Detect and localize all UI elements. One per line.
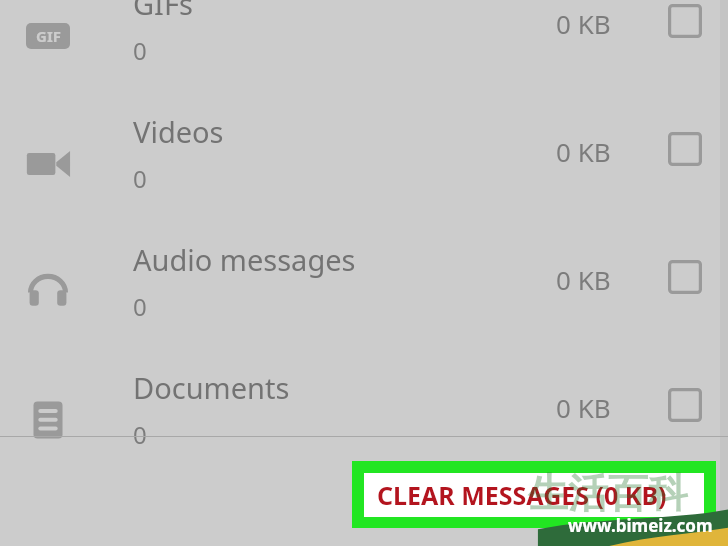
button[interactable]: Select Videos [668, 132, 702, 166]
button[interactable]: Select Documents [668, 388, 702, 422]
staticText: Documents [133, 368, 290, 407]
button[interactable]: CLEAR MESSAGES (0 KB) [352, 461, 716, 528]
staticText: www.bimeiz.com [568, 514, 713, 537]
staticText: CLEAR MESSAGES (0 KB) [377, 478, 667, 512]
staticText: 生活百科 [528, 468, 688, 518]
staticText: 0 [133, 34, 147, 67]
staticText: Audio messages [133, 240, 356, 279]
staticText: Videos [133, 112, 224, 151]
staticText: 0 KB [556, 262, 611, 297]
staticText: 0 [133, 162, 147, 195]
button[interactable]: Select GIFs [668, 4, 702, 38]
button[interactable]: Documents [0, 356, 728, 484]
staticText: 0 KB [556, 390, 611, 425]
button[interactable]: Audio messages [0, 228, 728, 356]
button[interactable]: Select Audio messages [668, 260, 702, 294]
button[interactable]: GIF [0, 0, 728, 100]
staticText: 0 [133, 290, 147, 323]
staticText: 0 KB [556, 6, 611, 41]
button[interactable]: Videos [0, 100, 728, 228]
staticText: GIF [36, 26, 61, 46]
staticText: 0 KB [556, 134, 611, 169]
staticText: GIFs [133, 0, 193, 23]
staticText: 0 [133, 418, 147, 451]
